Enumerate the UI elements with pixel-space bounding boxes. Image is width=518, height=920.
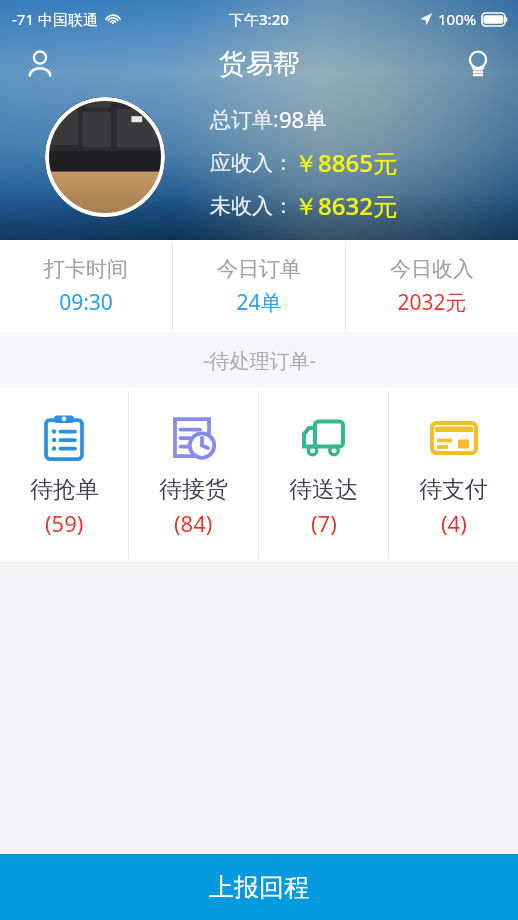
staticText: -待处理订单- xyxy=(203,347,316,374)
staticText: 未收入： xyxy=(210,193,294,219)
button[interactable]: 待接货 xyxy=(129,388,258,562)
staticText: 应收入： xyxy=(210,150,294,176)
button[interactable]: 待抢单 xyxy=(0,388,128,562)
button[interactable]: 今日订单 xyxy=(173,240,345,332)
staticText: 100% xyxy=(438,9,477,29)
staticText: 下午3:20 xyxy=(229,9,289,29)
staticText: 待接货 xyxy=(159,475,228,504)
staticText: 待抢单 xyxy=(30,475,99,504)
staticText: ￥8865元 xyxy=(294,146,397,179)
button[interactable]: Profile xyxy=(18,42,62,86)
staticText: 待送达 xyxy=(289,475,358,504)
button[interactable]: 打卡时间 xyxy=(0,240,172,332)
button[interactable]: 今日收入 xyxy=(346,240,518,332)
staticText: ￥8632元 xyxy=(294,189,397,222)
staticText: -71 中国联通 xyxy=(12,9,98,29)
button[interactable]: Avatar xyxy=(45,97,165,217)
staticText: 打卡时间 xyxy=(44,256,128,282)
button[interactable]: 待支付 xyxy=(389,388,518,562)
staticText: 今日收入 xyxy=(390,256,474,282)
staticText: 总订单: xyxy=(210,105,279,134)
staticText: 24单 xyxy=(236,288,282,317)
button[interactable]: 待送达 xyxy=(259,388,388,562)
staticText: (4) xyxy=(441,508,467,538)
staticText: 上报回程 xyxy=(209,872,309,903)
staticText: 今日订单 xyxy=(217,256,301,282)
button[interactable]: Tips xyxy=(456,42,500,86)
staticText: (59) xyxy=(45,508,84,538)
staticText: 货易帮 xyxy=(219,47,300,81)
staticText: 98单 xyxy=(279,104,327,134)
staticText: (84) xyxy=(174,508,213,538)
staticText: (7) xyxy=(311,508,337,538)
staticText: 09:30 xyxy=(59,288,113,317)
button[interactable]: 上报回程 xyxy=(0,854,518,920)
staticText: 2032元 xyxy=(397,288,467,317)
staticText: 待支付 xyxy=(419,475,488,504)
